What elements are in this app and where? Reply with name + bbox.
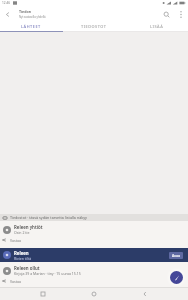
staticText: Rivien tiltä	[14, 256, 32, 261]
button[interactable]: Compose	[170, 271, 183, 284]
staticText: Kirjoja 39 a Marian · tiny · 15 uuraa 15…	[14, 271, 81, 276]
staticText: Nyt saatavilla yhdellä	[19, 15, 46, 19]
button[interactable]: LÄHTEET	[0, 22, 62, 31]
button[interactable]: Vastaa	[2, 238, 188, 248]
staticText: 12:46	[2, 1, 11, 5]
staticText: Releen yhtiöt	[14, 224, 43, 230]
staticText: Tiedon	[19, 9, 31, 14]
button[interactable]: LISÄÄ	[125, 22, 188, 31]
staticText: TIEDOSTOT	[81, 24, 107, 29]
staticText: Releen ollut	[14, 265, 40, 271]
button[interactable]: More options	[174, 8, 187, 21]
staticText: LISÄÄ	[150, 24, 164, 29]
staticText: LÄHTEET	[21, 24, 41, 29]
button[interactable]: Releen yhtiöt	[0, 221, 188, 248]
button[interactable]: Search	[159, 7, 174, 22]
staticText: Releen	[14, 250, 29, 256]
staticText: Tiedostot · tässä sydän tarvetta listall…	[10, 215, 87, 220]
button[interactable]: Recents	[35, 288, 51, 300]
button[interactable]: Back	[137, 288, 153, 300]
button[interactable]: Avaa	[169, 252, 183, 259]
staticText: Avaa	[172, 253, 180, 258]
button[interactable]: Releen	[0, 248, 188, 262]
button[interactable]: Releen ollut	[0, 262, 188, 287]
button[interactable]: Home	[86, 288, 102, 300]
button[interactable]: Back	[0, 7, 15, 22]
staticText: Osin 2 tie	[14, 230, 30, 235]
staticText: Vastaa	[10, 279, 21, 284]
button[interactable]: Vastaa	[2, 279, 188, 287]
staticText: Vastaa	[10, 238, 21, 243]
button[interactable]: TIEDOSTOT	[62, 22, 125, 31]
